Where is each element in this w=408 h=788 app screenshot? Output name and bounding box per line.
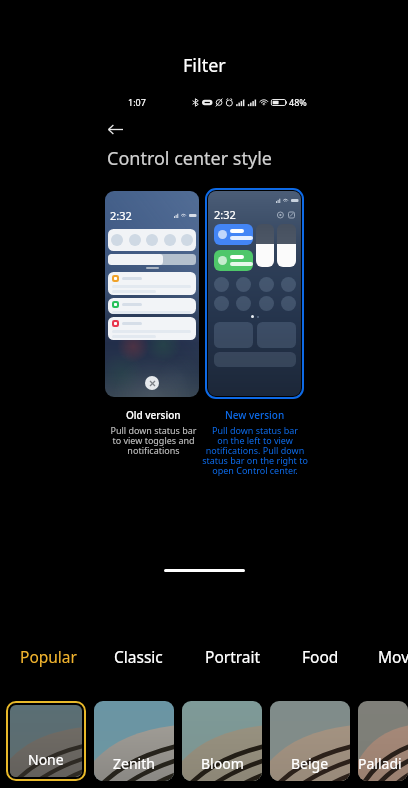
staticText: Movie (378, 646, 408, 667)
button[interactable]: None (10, 705, 82, 777)
button[interactable]: Popular (6, 635, 91, 678)
staticText: Zenith (113, 754, 155, 773)
staticText: Classic (114, 646, 163, 667)
button[interactable] (277, 224, 296, 267)
staticText: 2:32 (110, 208, 132, 223)
staticText: Control center style (107, 146, 272, 171)
staticText: Palladium (358, 754, 408, 773)
button[interactable] (256, 224, 274, 267)
staticText: Beige (291, 754, 329, 773)
button[interactable]: Palladium (358, 701, 408, 781)
staticText: 2:32 (214, 207, 236, 222)
button[interactable]: Back (102, 116, 128, 142)
button[interactable]: 2:32 (208, 191, 301, 396)
staticText: Filter (183, 53, 226, 78)
staticText: New version (225, 408, 285, 422)
staticText: 48% (289, 96, 307, 108)
button[interactable]: Classic (100, 635, 177, 678)
button[interactable]: Beige (270, 701, 350, 781)
staticText: Food (302, 646, 339, 667)
button[interactable]: Zenith (94, 701, 174, 781)
staticText: None (28, 750, 64, 769)
staticText: Portrait (205, 646, 261, 667)
button[interactable]: Portrait (191, 635, 275, 678)
staticText: 1:07 (128, 96, 146, 108)
button[interactable]: 2:32 (105, 191, 199, 397)
staticText: Old version (126, 408, 181, 422)
staticText: Bloom (201, 754, 244, 773)
button[interactable]: Food (288, 635, 353, 678)
staticText: Popular (20, 646, 77, 667)
button[interactable]: Bloom (182, 701, 262, 781)
button[interactable]: Movie (364, 635, 408, 678)
staticText: Pull down status bar to view toggles and… (110, 424, 197, 456)
button[interactable]: Close (145, 376, 159, 390)
staticText: Pull down status bar on the left to view… (202, 424, 308, 476)
